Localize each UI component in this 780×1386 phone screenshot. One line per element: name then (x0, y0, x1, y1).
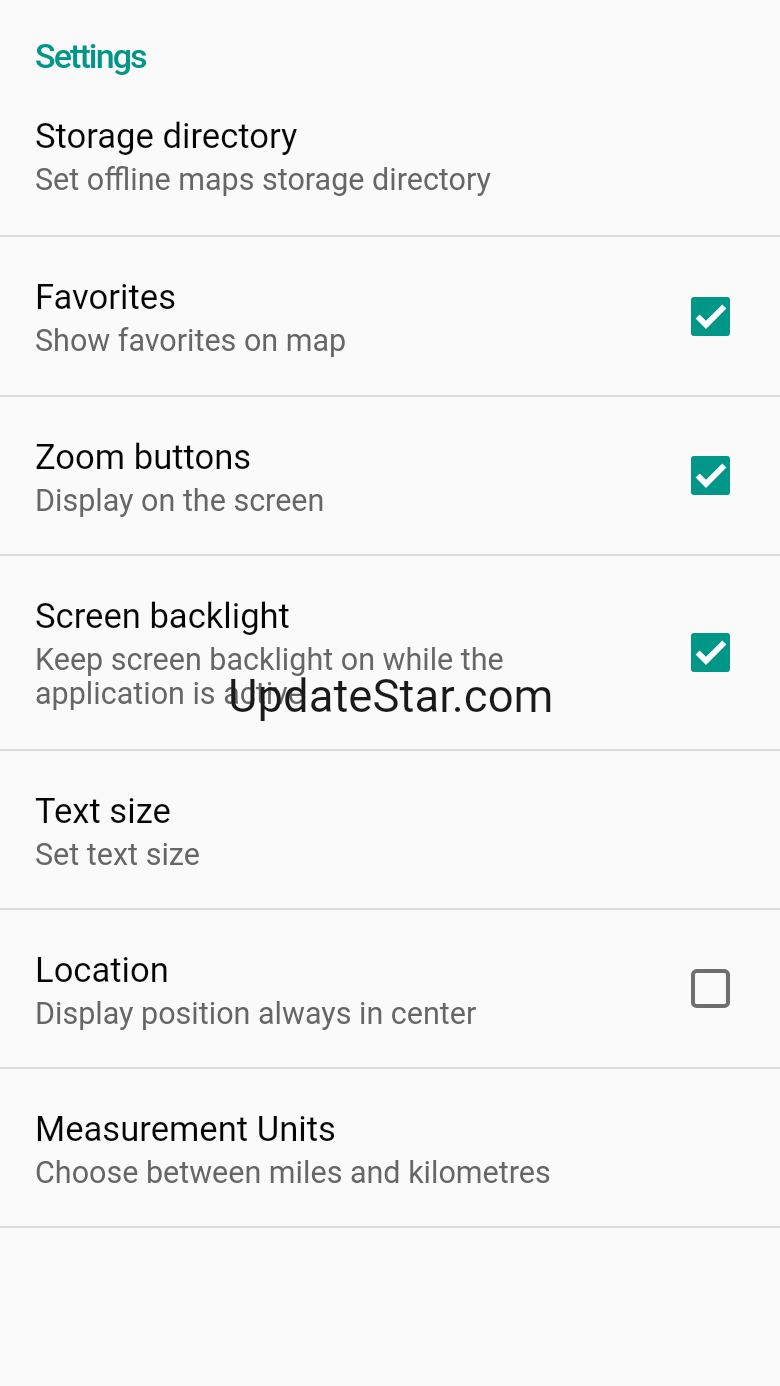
staticText: UpdateStar.com (228, 670, 554, 723)
staticText: Show favorites on map (35, 323, 635, 359)
staticText: Display on the screen (35, 483, 635, 519)
staticText: Zoom buttons (35, 437, 252, 478)
button[interactable]: Text size (0, 751, 780, 908)
staticText: Storage directory (35, 116, 298, 157)
button[interactable]: Settings (0, 0, 780, 76)
other: Location, disabled (691, 969, 730, 1008)
staticText: Text size (35, 791, 171, 832)
other: Favorites, enabled (691, 297, 730, 336)
button[interactable]: Location (0, 910, 780, 1067)
button[interactable]: Zoom buttons (0, 397, 780, 554)
staticText: Set text size (35, 837, 635, 873)
other: Screen backlight, enabled (691, 633, 730, 672)
staticText: Settings (35, 36, 146, 76)
other: Zoom buttons, enabled (691, 456, 730, 495)
staticText: Choose between miles and kilometres (35, 1155, 635, 1191)
staticText: Favorites (35, 277, 176, 318)
staticText: Set offline maps storage directory (35, 162, 635, 198)
button[interactable]: Measurement Units (0, 1069, 780, 1226)
staticText: Keep screen backlight on while the appli… (35, 642, 515, 712)
button[interactable]: Storage directory (0, 76, 780, 235)
staticText: Screen backlight (35, 596, 290, 637)
staticText: Location (35, 950, 169, 991)
button[interactable]: Screen backlight (0, 556, 780, 749)
staticText: Display position always in center (35, 996, 635, 1032)
staticText: Measurement Units (35, 1109, 336, 1150)
button[interactable]: Favorites (0, 237, 780, 395)
